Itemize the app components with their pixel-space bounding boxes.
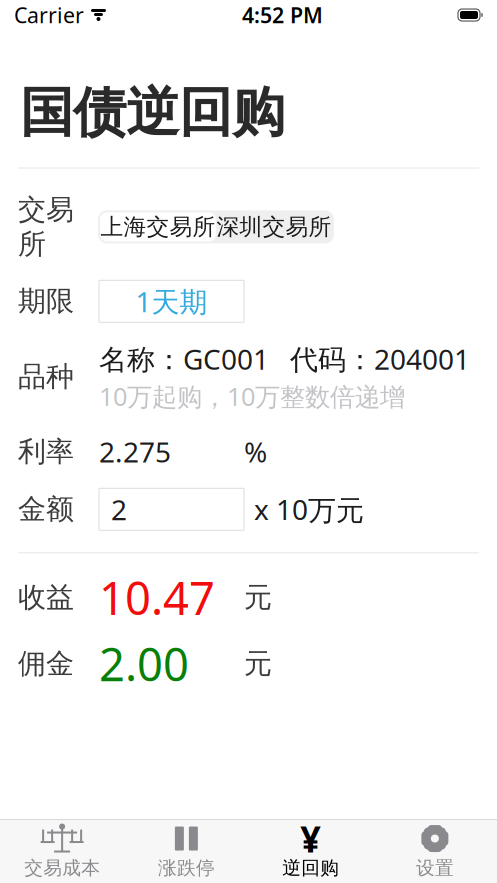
- button[interactable]: 2: [99, 488, 244, 530]
- staticText: 设置: [416, 856, 454, 879]
- staticText: Carrier: [14, 1, 84, 29]
- staticText: 2.00: [99, 633, 189, 694]
- staticText: x 10万元: [254, 491, 364, 528]
- staticText: 涨跌停: [158, 856, 215, 879]
- staticText: 深圳交易所: [216, 213, 331, 241]
- button[interactable]: 1天期: [99, 280, 244, 322]
- button[interactable]: 设置: [373, 820, 497, 883]
- button[interactable]: 交易成本: [0, 820, 124, 883]
- staticText: 元: [244, 646, 272, 681]
- button[interactable]: ¥: [248, 820, 373, 883]
- staticText: 元: [244, 580, 272, 615]
- button[interactable]: 深圳交易所: [216, 212, 332, 241]
- button[interactable]: 涨跌停: [124, 820, 248, 883]
- staticText: 10万起购，10万整数倍递增: [99, 379, 405, 413]
- staticText: 2: [111, 491, 127, 528]
- staticText: %: [244, 433, 267, 470]
- staticText: 品种: [18, 359, 74, 394]
- staticText: 利率: [18, 434, 74, 469]
- staticText: 金额: [18, 492, 74, 526]
- staticText: 上海交易所: [100, 213, 215, 241]
- staticText: 10.47: [99, 567, 215, 627]
- button[interactable]: 上海交易所: [100, 212, 216, 241]
- staticText: 交易所: [18, 192, 74, 261]
- staticText: ¥: [300, 815, 321, 862]
- staticText: 名称：GC001 代码：204001: [99, 340, 470, 377]
- staticText: 国债逆回购: [20, 80, 285, 145]
- staticText: 交易成本: [24, 856, 100, 879]
- staticText: 佣金: [18, 646, 74, 681]
- staticText: 收益: [18, 580, 74, 615]
- staticText: 1天期: [135, 283, 207, 320]
- staticText: 逆回购: [282, 856, 339, 879]
- staticText: 期限: [18, 284, 74, 318]
- staticText: 4:52 PM: [242, 1, 323, 29]
- staticText: 2.275: [99, 433, 171, 470]
